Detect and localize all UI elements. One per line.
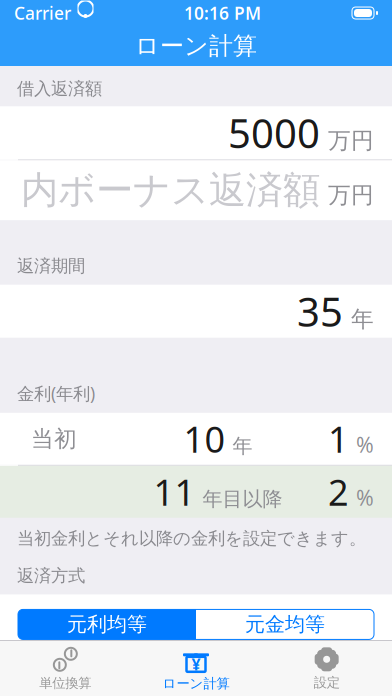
staticText: 元利均等 [67, 612, 147, 637]
staticText: 元金均等 [245, 612, 325, 637]
staticText: % [356, 483, 374, 512]
staticText: 10:16 PM [184, 1, 261, 24]
staticText: 当初 [31, 425, 77, 453]
button[interactable]: 当初 [0, 413, 392, 465]
staticText: 返済方式 [17, 565, 85, 586]
staticText: 2 [328, 468, 349, 516]
button[interactable]: 単位換算 [0, 643, 131, 693]
staticText: ローン計算 [135, 31, 257, 61]
staticText: 35 [297, 285, 343, 338]
staticText: 万円 [328, 127, 374, 155]
button[interactable]: 5000 [0, 106, 392, 159]
staticText: 年目以降 [202, 487, 282, 511]
staticText: 1 [328, 415, 349, 463]
staticText: 単位換算 [39, 675, 91, 691]
button[interactable]: 内ボーナス返済額 [0, 160, 392, 220]
staticText: 万円 [328, 181, 374, 209]
button[interactable]: ¥ [131, 643, 261, 693]
button[interactable]: 35 [0, 285, 392, 338]
button[interactable]: 設定 [261, 643, 392, 693]
button[interactable] [0, 466, 392, 518]
staticText: 借入返済額 [17, 78, 102, 99]
button[interactable]: 元金均等 [196, 609, 374, 639]
staticText: ローン計算 [162, 675, 229, 692]
staticText: 設定 [314, 674, 340, 691]
staticText: 年 [232, 434, 252, 458]
staticText: 返済期間 [17, 255, 85, 277]
staticText: Carrier [14, 1, 71, 24]
staticText: ¥ [191, 654, 200, 675]
staticText: 当初金利とそれ以降の金利を設定できます。 [17, 528, 366, 549]
staticText: 5000 [228, 106, 320, 159]
staticText: 10 [183, 415, 225, 463]
button[interactable]: 元利均等 [18, 609, 196, 639]
staticText: 11 [153, 468, 195, 516]
staticText: 金利(年利) [17, 382, 95, 405]
staticText: 年 [351, 305, 374, 333]
staticText: % [356, 430, 374, 459]
button[interactable]: ローン計算 [0, 26, 392, 66]
staticText: 内ボーナス返済額 [21, 167, 320, 213]
